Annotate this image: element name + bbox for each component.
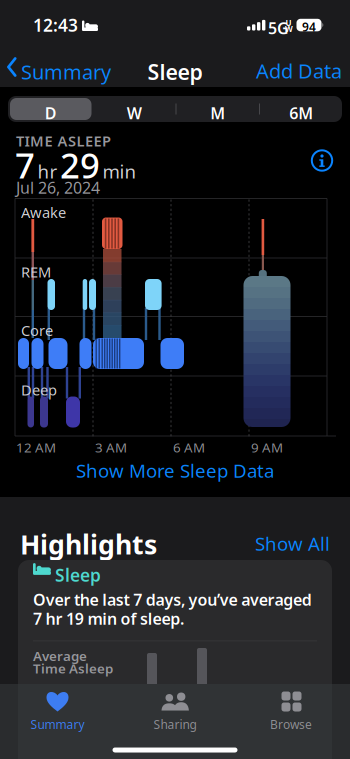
staticText: Jul 26, 2024 [16,177,100,198]
staticText: 29 [60,142,100,188]
staticText: Awake [21,202,66,222]
staticText: Over the last 7 days, you’ve averaged [33,589,312,610]
staticText: Core [21,320,53,340]
staticText: Show All [255,531,330,556]
staticText: Summary [21,58,111,85]
staticText: W [285,23,293,34]
staticText: Summary [30,716,84,732]
staticText: 7 [15,142,35,188]
staticText: Time Asleep [33,659,113,677]
staticText: TIME ASLEEP [16,131,111,150]
staticText: 12:43 [33,13,78,36]
staticText: 3 AM [95,438,127,456]
staticText: 5G [268,17,289,39]
staticText: W [127,102,142,124]
staticText: 9 AM [251,438,283,456]
staticText: Add Data [256,57,342,84]
staticText: 6M [289,102,313,124]
staticText: M [210,102,225,124]
staticText: D [45,102,57,124]
staticText: Sleep [55,563,101,586]
staticText: 6 AM [173,438,205,456]
staticText: 7 hr 19 min of sleep. [33,608,184,629]
staticText: Sharing [153,716,196,732]
staticText: Average [33,647,87,665]
staticText: Highlights [20,526,157,562]
staticText: U [285,17,291,28]
staticText: Browse [270,716,312,732]
staticText: Show More Sleep Data [76,458,274,483]
staticText: Sleep [147,57,202,86]
staticText: 12 AM [16,438,56,456]
staticText: REM [21,262,51,281]
staticText: min [102,159,136,184]
staticText: Deep [21,380,57,399]
staticText: hr [37,159,57,184]
staticText: 94 [302,19,316,35]
